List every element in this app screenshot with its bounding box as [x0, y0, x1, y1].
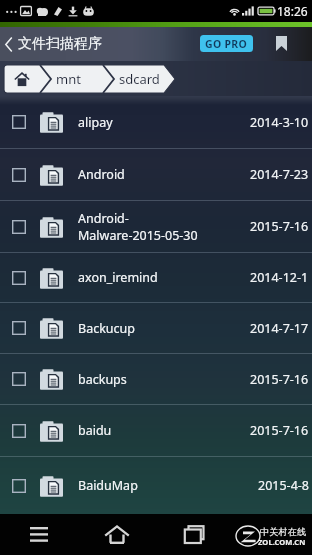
- button[interactable]: baidu: [0, 405, 312, 456]
- button[interactable]: BaiduMap: [0, 457, 312, 514]
- staticText: axon_iremind: [78, 269, 158, 286]
- button[interactable]: Android: [0, 149, 312, 200]
- staticText: Backucup: [78, 320, 135, 337]
- button[interactable]: GO PRO: [200, 35, 253, 52]
- staticText: 2014-7-23: [250, 166, 309, 183]
- staticText: 18:26: [277, 3, 308, 19]
- staticText: 2015-7-16: [250, 218, 309, 235]
- staticText: GO PRO: [205, 37, 248, 51]
- staticText: mnt: [56, 70, 81, 88]
- staticText: BaiduMap: [78, 477, 138, 494]
- staticText: 2015-7-16: [250, 371, 309, 388]
- staticText: 中关村在线: [260, 526, 306, 537]
- button[interactable]: backups: [0, 354, 312, 404]
- button[interactable]: alipay: [0, 96, 312, 148]
- button[interactable]: Menu: [16, 514, 62, 555]
- button[interactable]: 文件扫描程序: [0, 35, 112, 53]
- staticText: Android- Malware-2015-05-30: [78, 210, 198, 243]
- button[interactable]: Home: [94, 514, 140, 555]
- staticText: 文件扫描程序: [18, 35, 102, 53]
- staticText: sdcard: [119, 70, 160, 88]
- staticText: alipay: [78, 114, 113, 131]
- button[interactable]: mnt: [56, 65, 106, 93]
- staticText: 2014-7-17: [250, 320, 309, 337]
- staticText: 2015-7-16: [250, 422, 309, 439]
- button[interactable]: axon_iremind: [0, 253, 312, 302]
- button[interactable]: Bookmark: [267, 29, 295, 57]
- button[interactable]: Android- Malware-2015-05-30: [0, 201, 312, 252]
- staticText: ZOL.COM.CN: [258, 537, 306, 547]
- staticText: backups: [78, 371, 127, 388]
- button[interactable]: Recents: [172, 514, 218, 555]
- staticText: 2014-3-10: [250, 114, 309, 131]
- staticText: baidu: [78, 422, 112, 439]
- button[interactable]: Backucup: [0, 303, 312, 353]
- staticText: 2014-12-1: [250, 269, 309, 286]
- staticText: Android: [78, 166, 125, 183]
- button[interactable]: sdcard: [119, 65, 171, 93]
- staticText: 2015-4-8: [258, 477, 309, 494]
- button[interactable]: Home: [8, 65, 36, 93]
